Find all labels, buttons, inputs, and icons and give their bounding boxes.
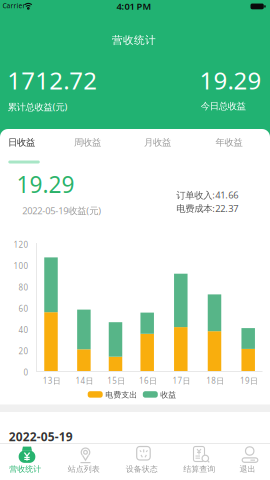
staticText: 100 xyxy=(13,261,28,271)
button[interactable]: 年收益 xyxy=(212,133,247,152)
button[interactable]: 站点列表 xyxy=(58,445,112,480)
staticText: 营收统计 xyxy=(9,464,41,474)
staticText: 0 xyxy=(23,367,28,378)
button[interactable]: 2022-05-19 xyxy=(3,426,79,447)
staticText: 20 xyxy=(18,346,28,356)
staticText: 19.29 xyxy=(17,169,75,199)
staticText: 周收益 xyxy=(74,137,101,148)
staticText: Carrier xyxy=(2,1,25,10)
staticText: 结算查询 xyxy=(183,464,215,474)
staticText: 15日 xyxy=(107,375,125,386)
staticText: 80 xyxy=(18,282,28,293)
staticText: 60 xyxy=(18,303,28,314)
staticText: 设备状态 xyxy=(126,464,158,474)
button[interactable]: 退出 xyxy=(221,445,270,480)
staticText: 120 xyxy=(13,239,28,250)
staticText: 订单收入:41.66 xyxy=(176,189,238,201)
staticText: 月收益 xyxy=(144,137,171,148)
button[interactable]: 周收益 xyxy=(70,133,105,152)
staticText: 电费成本:22.37 xyxy=(176,202,238,214)
staticText: 退出 xyxy=(240,464,256,474)
staticText: 电费支出 xyxy=(105,390,137,400)
staticText: 16日 xyxy=(139,375,157,386)
button[interactable]: 营收统计 xyxy=(0,445,54,480)
button[interactable]: 月收益 xyxy=(140,133,175,152)
staticText: 营收统计 xyxy=(112,34,156,47)
staticText: 19.29 xyxy=(199,64,261,96)
staticText: 站点列表 xyxy=(68,464,100,474)
staticText: 累计总收益(元) xyxy=(7,100,67,113)
staticText: 日收益 xyxy=(8,137,35,148)
staticText: 今日总收益 xyxy=(201,100,246,112)
staticText: 2022-05-19收益(元) xyxy=(22,204,101,217)
button[interactable]: 设备状态 xyxy=(116,445,170,480)
button[interactable]: 结算查询 xyxy=(174,445,228,480)
button[interactable]: 日收益 xyxy=(4,133,39,152)
staticText: 13日 xyxy=(43,375,61,386)
staticText: 19日 xyxy=(240,375,258,386)
staticText: 40 xyxy=(18,325,28,335)
staticText: 2022-05-19 xyxy=(9,429,73,444)
staticText: 年收益 xyxy=(216,137,243,148)
staticText: 收益 xyxy=(160,390,176,400)
staticText: 1712.72 xyxy=(7,64,97,96)
staticText: 14日 xyxy=(76,375,94,386)
staticText: 18日 xyxy=(206,375,224,386)
staticText: 17日 xyxy=(172,375,190,386)
staticText: 4:01 PM xyxy=(116,0,151,12)
